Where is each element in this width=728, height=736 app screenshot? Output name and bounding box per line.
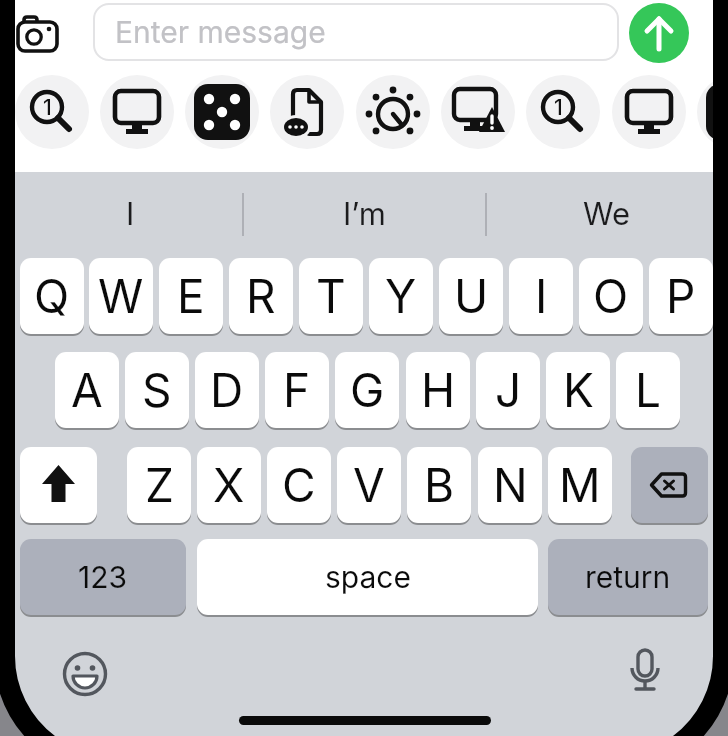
button[interactable]: B (407, 447, 471, 523)
button[interactable]: R (229, 258, 293, 334)
button[interactable]: V (337, 447, 401, 523)
staticText: W (98, 268, 144, 324)
button[interactable]: Enter message (93, 3, 619, 61)
staticText: I (535, 268, 548, 324)
staticText: S (142, 362, 172, 418)
staticText: O (593, 268, 629, 324)
button[interactable]: 1 (526, 75, 600, 149)
button[interactable]: Q (20, 258, 84, 334)
staticText: K (563, 362, 594, 418)
button[interactable]: C (267, 447, 331, 523)
button[interactable] (14, 11, 62, 59)
button[interactable] (612, 75, 686, 149)
button[interactable]: return (548, 539, 708, 615)
staticText: 1 (43, 95, 52, 120)
staticText: Y (385, 268, 417, 324)
button[interactable]: 1 (15, 75, 89, 149)
button[interactable]: I’m (243, 190, 485, 238)
staticText: 1 (554, 95, 563, 120)
staticText: P (666, 268, 696, 324)
button[interactable]: A (55, 352, 119, 428)
button[interactable]: F (265, 352, 329, 428)
staticText: X (213, 457, 245, 513)
staticText: Q (34, 268, 70, 324)
staticText: E (177, 268, 205, 324)
button[interactable]: Z (127, 447, 191, 523)
staticText: G (350, 362, 385, 418)
staticText: N (493, 457, 528, 513)
staticText: I’m (343, 195, 386, 233)
staticText: We (583, 195, 631, 233)
button[interactable]: E (159, 258, 223, 334)
button[interactable]: Y (369, 258, 433, 334)
button[interactable]: We (486, 190, 728, 238)
button[interactable]: S (125, 352, 189, 428)
button[interactable] (100, 75, 174, 149)
button[interactable]: K (546, 352, 610, 428)
staticText: F (283, 362, 311, 418)
button[interactable]: M (548, 447, 612, 523)
button[interactable] (631, 447, 708, 523)
button[interactable] (60, 649, 110, 699)
button[interactable] (356, 75, 430, 149)
button[interactable] (629, 3, 689, 63)
button[interactable]: space (197, 539, 538, 615)
button[interactable]: J (476, 352, 540, 428)
button[interactable]: 123 (20, 539, 186, 615)
button[interactable]: X (197, 447, 261, 523)
button[interactable]: I (509, 258, 573, 334)
button[interactable]: N (478, 447, 542, 523)
button[interactable]: P (649, 258, 713, 334)
staticText: T (316, 268, 346, 324)
staticText: I (126, 195, 135, 233)
button[interactable] (20, 447, 97, 523)
staticText: H (421, 362, 456, 418)
staticText: Z (145, 457, 174, 513)
button[interactable]: U (439, 258, 503, 334)
button[interactable]: D (195, 352, 259, 428)
staticText: space (325, 559, 411, 595)
button[interactable]: O (579, 258, 643, 334)
button[interactable]: W (89, 258, 153, 334)
staticText: U (454, 268, 489, 324)
button[interactable]: T (299, 258, 363, 334)
button[interactable]: G (335, 352, 399, 428)
staticText: C (282, 457, 316, 513)
staticText: L (635, 362, 662, 418)
staticText: Enter message (115, 14, 326, 50)
staticText: D (210, 362, 244, 418)
staticText: B (424, 457, 455, 513)
staticText: A (71, 362, 103, 418)
button[interactable] (185, 75, 259, 149)
button[interactable] (697, 75, 728, 149)
button[interactable]: H (406, 352, 470, 428)
button[interactable] (270, 75, 344, 149)
button[interactable] (620, 647, 670, 697)
staticText: return (585, 559, 671, 595)
staticText: R (246, 268, 276, 324)
staticText: M (559, 457, 601, 513)
button[interactable]: I (9, 190, 251, 238)
button[interactable] (441, 75, 515, 149)
staticText: J (495, 362, 522, 418)
staticText: 123 (78, 559, 128, 595)
staticText: V (353, 457, 385, 513)
button[interactable]: L (616, 352, 680, 428)
